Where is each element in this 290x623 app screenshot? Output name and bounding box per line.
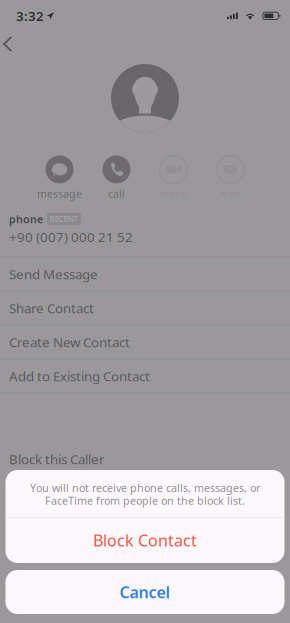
staticText: Create New Contact xyxy=(9,333,130,351)
button[interactable]: Back xyxy=(0,30,24,58)
staticText: RECENT xyxy=(49,214,78,224)
button[interactable]: Create New Contact xyxy=(0,325,290,359)
staticText: Add to Existing Contact xyxy=(9,367,150,385)
staticText: FaceTime from people on the block list. xyxy=(45,493,245,508)
button[interactable]: Share Contact xyxy=(0,291,290,325)
staticText: message xyxy=(37,186,82,201)
staticText: Block this Caller xyxy=(9,450,105,468)
button[interactable]: call xyxy=(88,157,145,199)
button[interactable]: Cancel xyxy=(5,570,284,614)
button[interactable]: Send Message xyxy=(0,257,290,291)
button[interactable]: Block Contact xyxy=(5,518,284,563)
staticText: Send Message xyxy=(9,265,98,283)
button[interactable]: message xyxy=(31,157,88,199)
staticText: Share Contact xyxy=(9,299,94,317)
staticText: 3:32 xyxy=(16,7,44,25)
staticText: Cancel xyxy=(119,581,170,603)
staticText: Block Contact xyxy=(93,530,197,551)
button[interactable]: Add to Existing Contact xyxy=(0,359,290,393)
staticText: You will not receive phone calls, messag… xyxy=(30,481,260,495)
staticText: phone xyxy=(9,212,43,226)
staticText: call xyxy=(108,186,125,201)
button[interactable]: Block this Caller xyxy=(0,442,290,476)
staticText: +90 (007) 000 21 52 xyxy=(9,228,133,246)
